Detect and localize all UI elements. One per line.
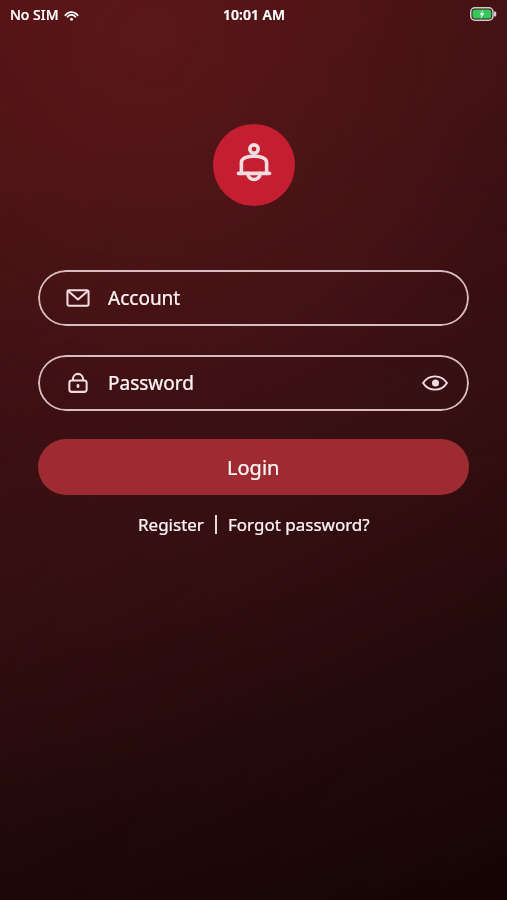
staticText: No SIM bbox=[10, 5, 59, 24]
staticText: Register bbox=[138, 513, 204, 536]
button[interactable]: Show password bbox=[415, 363, 455, 403]
button[interactable]: Password bbox=[38, 355, 469, 411]
button[interactable]: Forgot password? bbox=[222, 508, 376, 541]
button[interactable]: Login bbox=[38, 439, 469, 495]
button[interactable]: Account bbox=[38, 270, 469, 326]
staticText: Account bbox=[108, 285, 181, 311]
other: App logo notification bell bbox=[213, 124, 295, 206]
button[interactable]: Register bbox=[132, 508, 210, 541]
staticText: Forgot password? bbox=[228, 513, 370, 536]
staticText: 10:01 AM bbox=[223, 5, 285, 24]
staticText: Password bbox=[108, 370, 194, 396]
staticText: Login bbox=[227, 454, 280, 481]
